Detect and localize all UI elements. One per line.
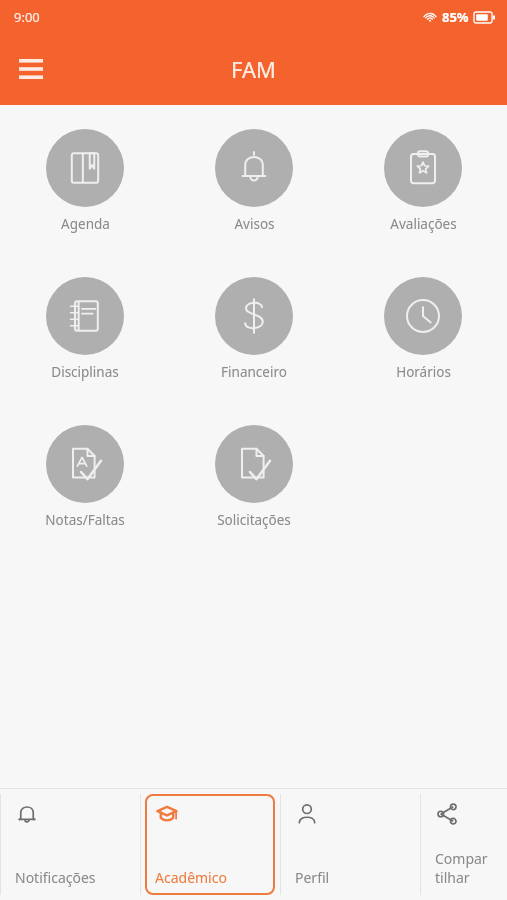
staticText: Perfil — [295, 868, 330, 887]
button[interactable]: Avaliações — [363, 127, 483, 235]
staticText: Avisos — [234, 215, 275, 233]
staticText: Avaliações — [390, 215, 457, 233]
button[interactable]: Acadêmico — [145, 794, 275, 895]
staticText: Notas/Faltas — [45, 511, 125, 529]
staticText: Notificações — [15, 868, 96, 887]
staticText: Agenda — [61, 215, 110, 233]
button[interactable]: Perfil — [285, 794, 415, 895]
staticText: Solicitações — [217, 511, 291, 529]
button[interactable]: Horários — [363, 275, 483, 383]
button[interactable]: Financeiro — [194, 275, 314, 383]
button[interactable]: Menu — [8, 46, 54, 92]
staticText: Financeiro — [221, 363, 287, 381]
staticText: FAM — [231, 54, 276, 84]
staticText: Acadêmico — [155, 868, 227, 887]
staticText: 9:00 — [14, 8, 40, 26]
staticText: Disciplinas — [51, 363, 119, 381]
button[interactable]: Disciplinas — [25, 275, 145, 383]
button[interactable]: Agenda — [25, 127, 145, 235]
button[interactable]: Avisos — [194, 127, 314, 235]
staticText: 85% — [442, 8, 469, 26]
staticText: Compartilhar App — [435, 849, 492, 887]
button[interactable]: Notificações — [5, 794, 135, 895]
button[interactable]: Notas/Faltas — [25, 423, 145, 531]
staticText: Horários — [396, 363, 451, 381]
button[interactable]: Compartilhar App — [425, 794, 502, 895]
button[interactable]: Solicitações — [194, 423, 314, 531]
